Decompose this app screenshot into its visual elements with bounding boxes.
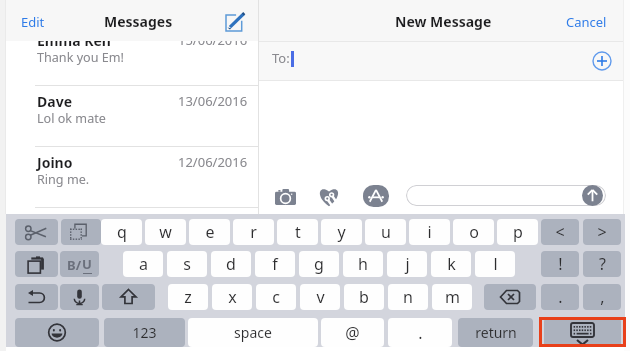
button[interactable]: ! bbox=[541, 251, 579, 277]
staticText: New Message bbox=[395, 12, 492, 31]
staticText: Lol ok mate bbox=[37, 110, 106, 127]
staticText: p bbox=[513, 221, 523, 243]
staticText: f bbox=[272, 253, 278, 275]
button[interactable]: d bbox=[211, 251, 251, 277]
button[interactable]: g bbox=[299, 251, 339, 277]
button[interactable]: Joino bbox=[0, 147, 258, 208]
staticText: n bbox=[403, 286, 413, 308]
button[interactable]: b bbox=[344, 284, 384, 310]
button[interactable]: m bbox=[432, 284, 472, 310]
staticText: < bbox=[555, 221, 565, 243]
button[interactable]: shift bbox=[102, 284, 155, 310]
button[interactable]: v bbox=[300, 284, 340, 310]
staticText: d bbox=[226, 253, 236, 275]
staticText: e bbox=[205, 221, 215, 243]
button[interactable]: n bbox=[388, 284, 428, 310]
button[interactable]: Camera bbox=[275, 188, 296, 205]
staticText: @ bbox=[345, 322, 360, 344]
staticText: a bbox=[139, 253, 148, 275]
staticText: q bbox=[117, 221, 127, 243]
button[interactable]: 123 bbox=[104, 318, 185, 347]
button[interactable]: k bbox=[431, 251, 471, 277]
staticText: y bbox=[337, 221, 346, 243]
staticText: > bbox=[597, 221, 607, 243]
staticText: 15/06/2016 bbox=[178, 31, 248, 49]
staticText: w bbox=[159, 221, 172, 243]
button[interactable]: return bbox=[458, 318, 533, 347]
button[interactable]: Emma Ken bbox=[0, 25, 258, 86]
staticText: j bbox=[405, 253, 410, 275]
button[interactable]: , bbox=[583, 284, 621, 310]
button[interactable]: s bbox=[167, 251, 207, 277]
button[interactable]: cut bbox=[15, 219, 58, 245]
staticText: . bbox=[558, 286, 563, 308]
staticText: ? bbox=[599, 253, 606, 275]
button[interactable]: r bbox=[233, 219, 274, 245]
staticText: o bbox=[469, 221, 479, 243]
button[interactable]: space bbox=[188, 318, 318, 347]
button[interactable]: Compose bbox=[224, 13, 246, 35]
staticText: b bbox=[359, 286, 369, 308]
staticText: x bbox=[228, 286, 237, 308]
staticText: 123 bbox=[132, 323, 157, 342]
button[interactable]: a bbox=[123, 251, 163, 277]
button[interactable]: Dave bbox=[0, 86, 258, 147]
staticText: Dave bbox=[37, 92, 72, 111]
staticText: Thank you Em! bbox=[37, 49, 124, 66]
button[interactable]: bu bbox=[60, 251, 99, 277]
button[interactable]: i bbox=[409, 219, 450, 245]
staticText: . bbox=[418, 322, 423, 344]
button[interactable]: App Store bbox=[363, 185, 389, 207]
button[interactable]: x bbox=[212, 284, 252, 310]
staticText: , bbox=[600, 286, 605, 308]
button[interactable]: Cancel bbox=[566, 13, 607, 31]
button[interactable]: < bbox=[541, 219, 579, 245]
button[interactable]: emoji bbox=[15, 318, 99, 347]
staticText: r bbox=[250, 221, 257, 243]
button[interactable]: o bbox=[453, 219, 494, 245]
staticText: i bbox=[427, 221, 432, 243]
button[interactable]: copy bbox=[61, 219, 101, 245]
button[interactable] bbox=[406, 185, 606, 206]
button[interactable]: mic bbox=[60, 284, 99, 310]
button[interactable]: undo bbox=[15, 284, 58, 310]
button[interactable]: z bbox=[168, 284, 208, 310]
button[interactable]: Add contact bbox=[592, 51, 612, 71]
staticText: t bbox=[295, 221, 301, 243]
button[interactable]: j bbox=[387, 251, 427, 277]
button[interactable]: e bbox=[189, 219, 230, 245]
button[interactable]: bksp bbox=[484, 284, 536, 310]
button[interactable]: ? bbox=[583, 251, 621, 277]
button[interactable]: w bbox=[145, 219, 186, 245]
staticText: 12/06/2016 bbox=[178, 153, 248, 171]
staticText: space bbox=[234, 323, 272, 342]
button[interactable]: hidekb bbox=[544, 318, 621, 347]
staticText: c bbox=[272, 286, 280, 308]
button[interactable]: f bbox=[255, 251, 295, 277]
button[interactable]: h bbox=[343, 251, 383, 277]
button[interactable]: Edit bbox=[21, 13, 45, 31]
button[interactable]: u bbox=[365, 219, 406, 245]
button[interactable]: Send bbox=[582, 185, 603, 206]
button[interactable]: c bbox=[256, 284, 296, 310]
button[interactable]: q bbox=[101, 219, 142, 245]
button[interactable]: paste bbox=[15, 251, 58, 277]
button[interactable]: Digital Touch bbox=[318, 186, 340, 207]
button[interactable]: > bbox=[583, 219, 621, 245]
button[interactable]: p bbox=[497, 219, 538, 245]
staticText: Emma Ken bbox=[37, 31, 111, 50]
staticText: 13/06/2016 bbox=[178, 92, 248, 110]
button[interactable]: . bbox=[388, 318, 452, 347]
button[interactable]: @ bbox=[321, 318, 384, 347]
staticText: s bbox=[183, 253, 191, 275]
staticText: return bbox=[475, 323, 517, 342]
staticText: h bbox=[358, 253, 368, 275]
staticText: l bbox=[493, 253, 498, 275]
button[interactable]: y bbox=[321, 219, 362, 245]
staticText: To: bbox=[272, 49, 290, 67]
button[interactable]: . bbox=[541, 284, 579, 310]
staticText: ! bbox=[558, 253, 563, 275]
button[interactable]: l bbox=[475, 251, 515, 277]
button[interactable]: t bbox=[277, 219, 318, 245]
staticText: Joino bbox=[37, 153, 73, 172]
